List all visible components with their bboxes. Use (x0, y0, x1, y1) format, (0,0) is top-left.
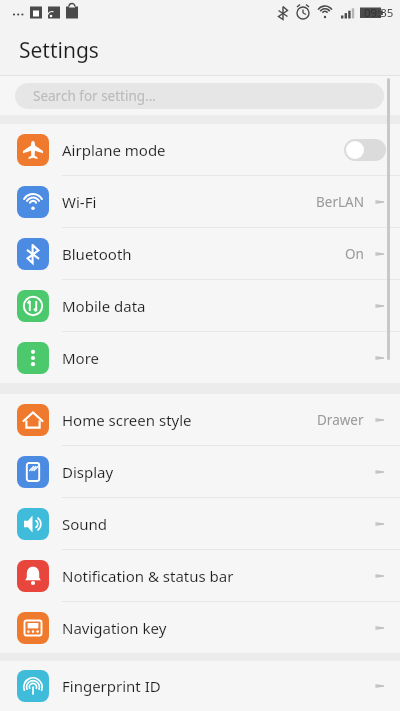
button[interactable]: More (0, 332, 400, 383)
button[interactable]: Bluetooth (0, 228, 400, 279)
button[interactable]: Display (0, 446, 400, 497)
staticText: More (62, 348, 372, 368)
button[interactable]: Search for setting... (15, 83, 384, 109)
staticText: Mobile data (62, 296, 372, 316)
button[interactable]: Airplane mode toggle (344, 139, 386, 161)
button[interactable]: Home screen style (0, 394, 400, 445)
staticText: Search for setting... (33, 87, 156, 105)
staticText: Airplane mode (62, 140, 344, 160)
staticText: Wi-Fi (62, 192, 316, 212)
staticText: Fingerprint ID (62, 676, 372, 696)
button[interactable]: Notification & status bar (0, 550, 400, 601)
button[interactable]: Fingerprint ID (0, 661, 400, 711)
button[interactable]: Mobile data (0, 280, 400, 331)
button[interactable]: Sound (0, 498, 400, 549)
staticText: Settings (19, 36, 99, 65)
staticText: 09:35 (364, 5, 394, 21)
staticText: Sound (62, 514, 372, 534)
staticText: Drawer (317, 411, 364, 429)
staticText: Notification & status bar (62, 566, 372, 586)
staticText: Display (62, 462, 372, 482)
staticText: On (345, 245, 364, 263)
staticText: Bluetooth (62, 244, 345, 264)
staticText: BerLAN (316, 193, 364, 211)
button[interactable]: Airplane mode (0, 124, 400, 175)
button[interactable]: Wi-Fi (0, 176, 400, 227)
staticText: Home screen style (62, 410, 317, 430)
button[interactable]: Navigation key (0, 602, 400, 653)
staticText: Navigation key (62, 618, 372, 638)
